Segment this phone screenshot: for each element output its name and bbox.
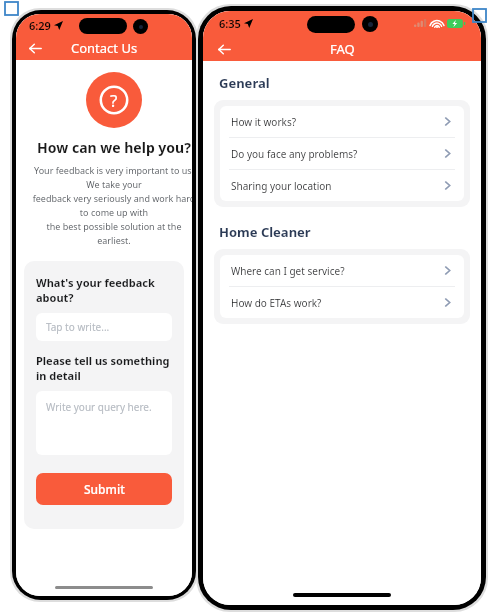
staticText: Your feedback is very important to us. W… — [30, 164, 192, 247]
button[interactable]: Sharing your location — [220, 170, 464, 201]
staticText: How can we help you? — [26, 138, 192, 157]
button[interactable]: Back — [211, 37, 237, 61]
staticText: Do you face any problems? — [231, 147, 358, 161]
staticText: 6:29 — [29, 18, 51, 33]
button[interactable]: Do you face any problems? — [220, 138, 464, 169]
staticText: Contact Us — [71, 39, 138, 57]
staticText: Write your query here. — [46, 400, 152, 414]
button[interactable]: Where can I get service? — [220, 255, 464, 286]
staticText: Tap to write... — [46, 320, 110, 334]
staticText: ? — [110, 89, 118, 112]
button[interactable]: Tap to write... — [36, 313, 172, 341]
button[interactable]: How do ETAs work? — [220, 287, 464, 318]
staticText: How do ETAs work? — [231, 296, 322, 310]
staticText: Submit — [84, 481, 125, 497]
staticText: Please tell us something in detail — [36, 353, 172, 383]
button[interactable]: Back — [22, 36, 48, 60]
staticText: What's your feedback about? — [36, 275, 172, 305]
staticText: Sharing your location — [231, 179, 332, 193]
staticText: Home Cleaner — [219, 223, 311, 241]
button[interactable]: Submit — [36, 473, 172, 505]
button[interactable]: How it works? — [220, 106, 464, 137]
staticText: General — [219, 74, 270, 92]
staticText: How it works? — [231, 115, 297, 129]
button[interactable]: Write your query here. — [36, 391, 172, 455]
staticText: Where can I get service? — [231, 264, 345, 278]
staticText: FAQ — [330, 40, 355, 58]
staticText: 6:35 — [219, 16, 241, 31]
